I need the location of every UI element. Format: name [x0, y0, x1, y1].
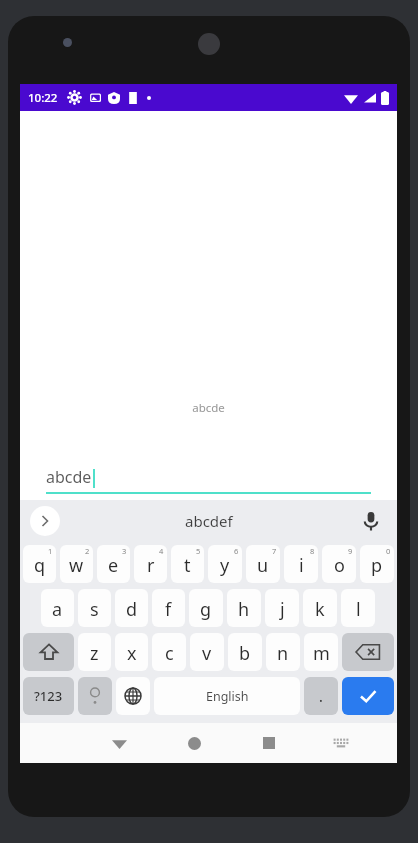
button[interactable]: v [190, 633, 224, 671]
staticText: i [299, 553, 304, 578]
button[interactable]: Shift [23, 633, 74, 671]
staticText: abcde [46, 466, 92, 488]
button[interactable]: Home [177, 726, 211, 760]
staticText: 5 [196, 546, 201, 556]
button[interactable]: c [152, 633, 186, 671]
staticText: . [319, 687, 323, 706]
staticText: 6 [234, 546, 239, 556]
button[interactable]: l [341, 589, 375, 627]
button[interactable]: p [360, 545, 394, 583]
staticText: 1 [48, 546, 53, 556]
staticText: z [90, 641, 99, 666]
button[interactable]: y [208, 545, 242, 583]
staticText: x [127, 641, 137, 666]
staticText: q [34, 553, 46, 578]
button[interactable]: b [228, 633, 262, 671]
button[interactable]: i [284, 545, 318, 583]
button[interactable]: abcdef [185, 511, 233, 531]
staticText: l [356, 597, 361, 622]
staticText: e [108, 553, 119, 578]
staticText: abcdef [185, 511, 233, 531]
staticText: j [280, 597, 285, 622]
button[interactable]: g [189, 589, 223, 627]
staticText: v [202, 641, 212, 666]
button[interactable]: Switch keyboard [326, 728, 356, 758]
staticText: w [69, 553, 84, 578]
staticText: h [238, 597, 250, 622]
button[interactable]: Change language [116, 677, 150, 715]
button[interactable]: n [266, 633, 300, 671]
staticText: a [52, 597, 63, 622]
staticText: o [334, 553, 345, 578]
button[interactable]: English [154, 677, 300, 715]
staticText: f [165, 597, 172, 622]
staticText: r [147, 553, 155, 578]
staticText: 8 [310, 546, 315, 556]
button[interactable]: w [60, 545, 93, 583]
button[interactable]: s [78, 589, 111, 627]
staticText: 0 [386, 546, 391, 556]
button[interactable]: r [134, 545, 167, 583]
button[interactable]: Back [102, 726, 136, 760]
button[interactable]: m [304, 633, 338, 671]
staticText: abcde [20, 400, 397, 416]
staticText: g [200, 597, 212, 622]
button[interactable]: Backspace [342, 633, 394, 671]
button[interactable]: d [115, 589, 148, 627]
button[interactable]: j [265, 589, 299, 627]
staticText: ?123 [34, 687, 63, 705]
button[interactable]: o [322, 545, 356, 583]
button[interactable]: u [246, 545, 280, 583]
staticText: 9 [348, 546, 353, 556]
staticText: u [257, 553, 269, 578]
button[interactable]: z [78, 633, 111, 671]
staticText: k [315, 597, 325, 622]
button[interactable]: Expand suggestions [30, 506, 60, 536]
button[interactable]: h [227, 589, 261, 627]
button[interactable]: Recents [252, 726, 286, 760]
staticText: p [371, 553, 383, 578]
staticText: 2 [85, 546, 90, 556]
staticText: n [277, 641, 289, 666]
button[interactable]: x [115, 633, 148, 671]
button[interactable]: Enter [342, 677, 394, 715]
staticText: d [126, 597, 138, 622]
staticText: t [184, 553, 191, 578]
staticText: s [90, 597, 99, 622]
staticText: 7 [272, 546, 277, 556]
button[interactable]: Emoji [78, 677, 112, 715]
button[interactable]: e [97, 545, 130, 583]
staticText: b [239, 641, 251, 666]
button[interactable]: q [23, 545, 56, 583]
button[interactable]: Symbols [23, 677, 74, 715]
staticText: 4 [159, 546, 164, 556]
button[interactable]: a [41, 589, 74, 627]
button[interactable]: Voice input [359, 509, 383, 533]
staticText: y [220, 553, 230, 578]
button[interactable]: k [303, 589, 337, 627]
staticText: English [206, 688, 249, 705]
staticText: m [313, 641, 330, 666]
staticText: 10:22 [28, 90, 58, 106]
button[interactable]: t [171, 545, 204, 583]
staticText: c [165, 641, 174, 666]
button[interactable]: . [304, 677, 338, 715]
button[interactable]: f [152, 589, 185, 627]
staticText: 3 [122, 546, 127, 556]
